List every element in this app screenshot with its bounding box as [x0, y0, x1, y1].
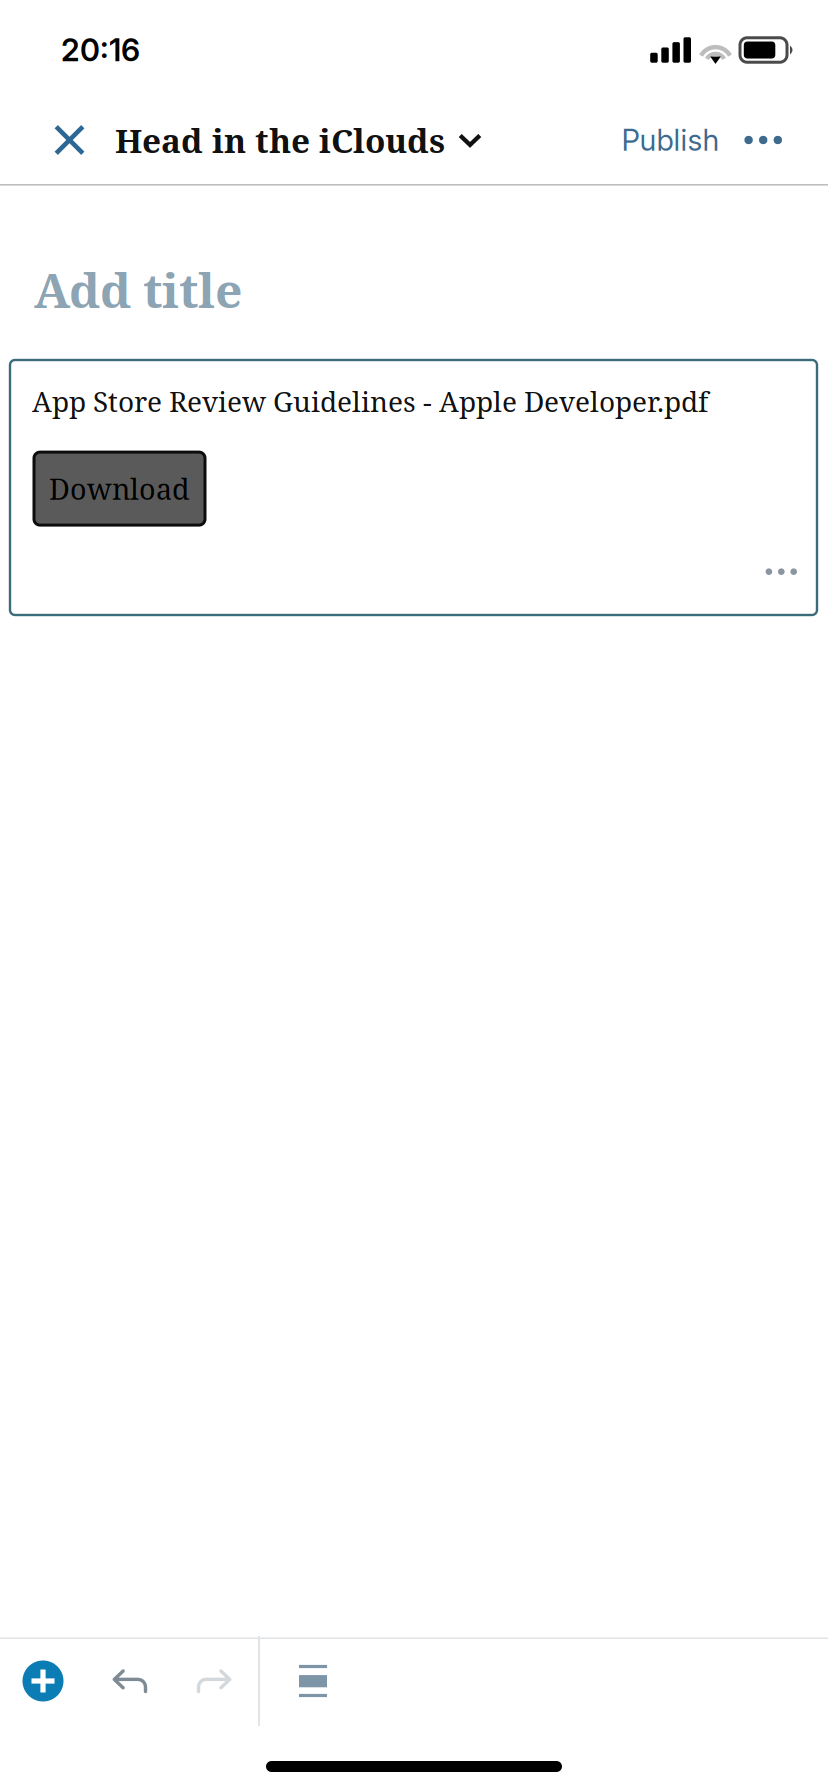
button[interactable]: Paragraph block settings	[260, 1636, 366, 1726]
staticText: App Store Review Guidelines - Apple Deve…	[32, 382, 708, 420]
button[interactable]: Download	[34, 452, 205, 525]
button[interactable]: Redo	[172, 1636, 258, 1726]
button[interactable]: Add block	[0, 1636, 86, 1726]
button[interactable]: Close	[0, 93, 115, 187]
staticText: Publish	[621, 122, 719, 158]
button[interactable]: Publish	[621, 93, 719, 187]
button[interactable]: Block options	[746, 548, 817, 615]
staticText: 20:16	[61, 31, 140, 68]
staticText: Head in the iClouds	[115, 117, 445, 163]
button[interactable]: Undo	[86, 1636, 172, 1726]
staticText: Download	[49, 469, 190, 508]
button[interactable]: More options	[719, 93, 828, 187]
button[interactable]: Head in the iClouds	[115, 93, 482, 187]
staticText: Add title	[34, 257, 242, 322]
